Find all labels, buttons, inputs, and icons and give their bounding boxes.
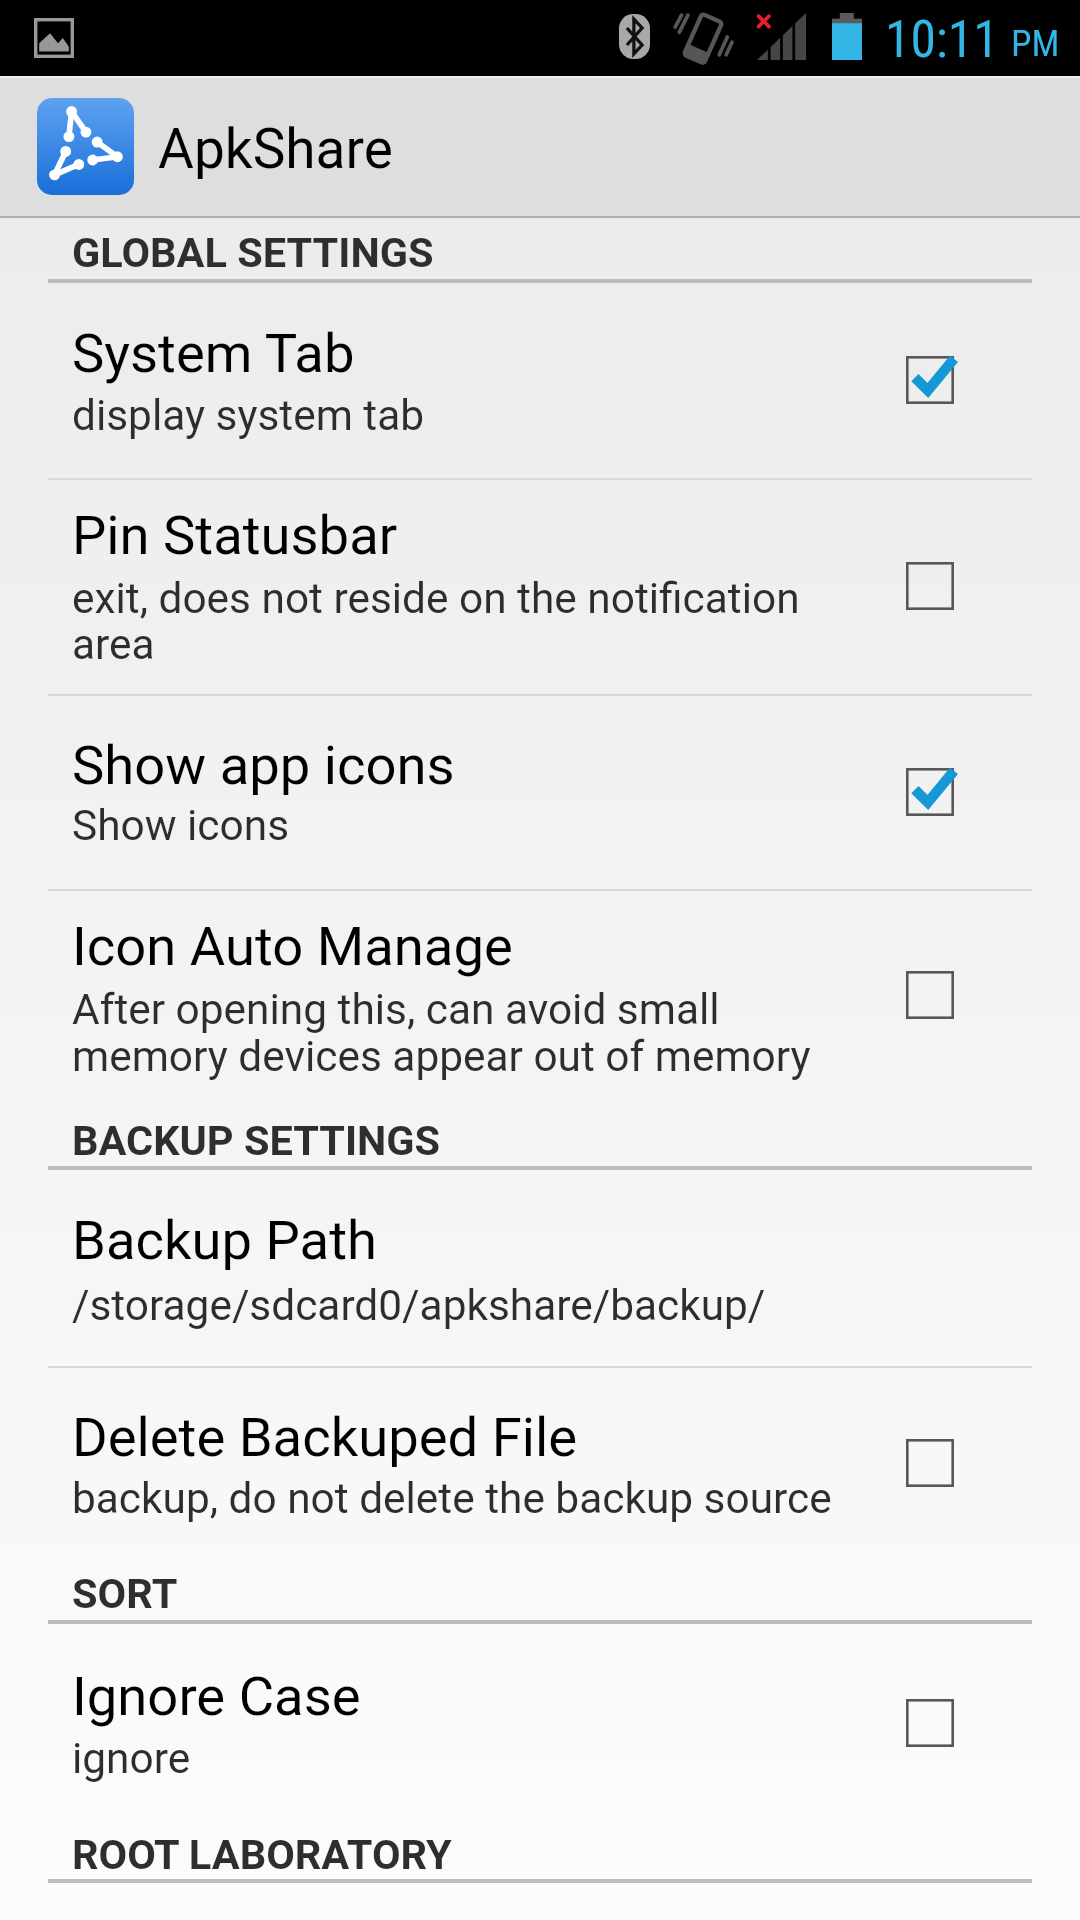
staticText: ROOT LABORATORY	[72, 1830, 452, 1879]
staticText: BACKUP SETTINGS	[72, 1116, 441, 1165]
staticText: 10:11	[885, 9, 999, 69]
staticText: display system tab	[72, 391, 425, 441]
staticText: GLOBAL SETTINGS	[72, 228, 434, 277]
button[interactable]: Delete Backuped File	[0, 1366, 1080, 1561]
staticText: Ignore Case	[72, 1665, 361, 1729]
staticText: After opening this, can avoid small	[72, 985, 720, 1035]
staticText: ApkShare	[158, 117, 393, 181]
button[interactable]: Ignore Case	[0, 1625, 1080, 1820]
button[interactable]: Backup Path	[0, 1171, 1080, 1366]
staticText: Show icons	[72, 801, 290, 851]
staticText: exit, does not reside on the notificatio…	[72, 574, 800, 624]
other: ApkShare icon	[37, 98, 134, 195]
staticText: Backup Path	[72, 1209, 377, 1273]
button[interactable]: Show app icons	[0, 694, 1080, 889]
staticText: System Tab	[72, 322, 355, 386]
button[interactable]: Enable Icon Auto Manage	[870, 935, 990, 1055]
staticText: PM	[1011, 22, 1060, 65]
button[interactable]: Enable Pin Statusbar	[870, 526, 990, 646]
button[interactable]: Enable Ignore Case	[870, 1663, 990, 1783]
staticText: Pin Statusbar	[72, 504, 398, 568]
staticText: ignore	[72, 1734, 191, 1784]
button[interactable]: Pin Statusbar	[0, 478, 1080, 694]
button[interactable]: System Tab	[0, 283, 1080, 478]
staticText: /storage/sdcard0/apkshare/backup/	[72, 1281, 766, 1331]
button[interactable]: Enable Delete Backuped File	[870, 1403, 990, 1523]
staticText: Show app icons	[72, 734, 455, 798]
staticText: SORT	[72, 1569, 178, 1618]
button[interactable]: Disable System Tab	[870, 320, 990, 440]
staticText: Icon Auto Manage	[72, 915, 513, 979]
staticText: memory devices appear out of memory	[72, 1032, 811, 1082]
button[interactable]: Disable Show app icons	[870, 732, 990, 852]
staticText: backup, do not delete the backup source	[72, 1474, 832, 1524]
staticText: area	[72, 620, 155, 670]
staticText: Delete Backuped File	[72, 1406, 578, 1470]
button[interactable]: Icon Auto Manage	[0, 889, 1080, 1100]
